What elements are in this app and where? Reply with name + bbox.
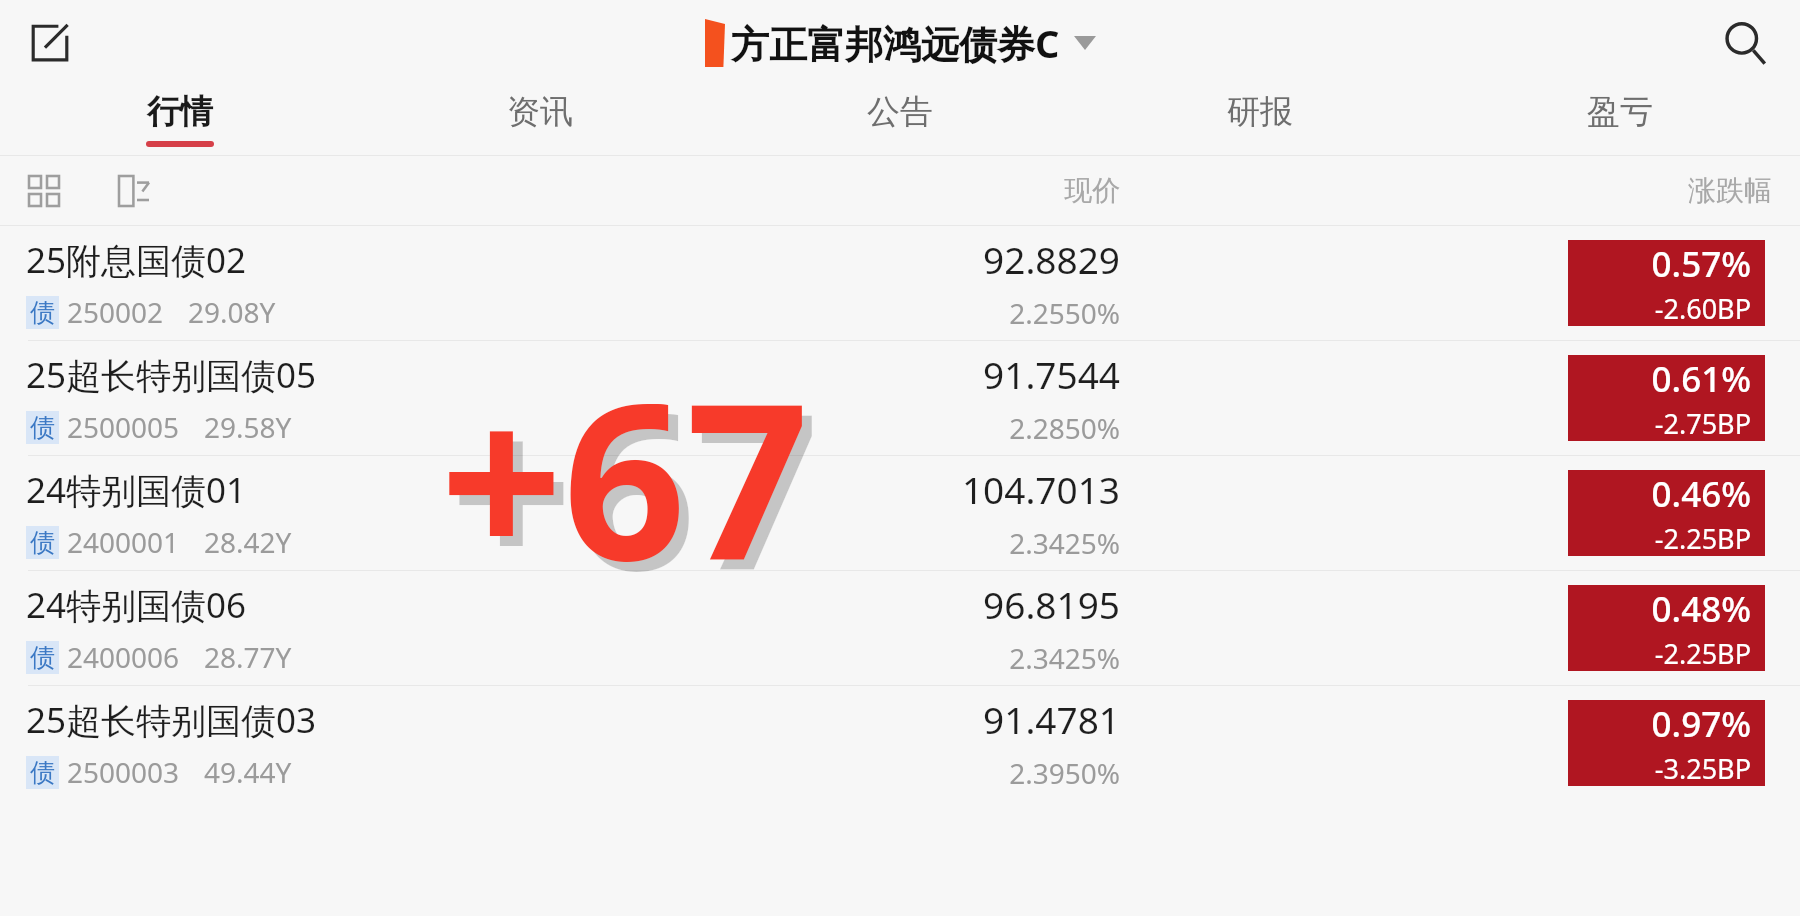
staticText: 方正富邦鸿远债券C xyxy=(731,17,1060,69)
staticText: 49.44Y xyxy=(204,753,292,791)
staticText: 104.7013 xyxy=(961,464,1120,514)
button[interactable]: Sort xyxy=(112,169,156,213)
staticText: 债 xyxy=(30,527,55,558)
staticText: 28.77Y xyxy=(204,638,292,676)
staticText: 研报 xyxy=(1227,91,1293,133)
staticText: 2400001 xyxy=(67,523,180,561)
staticText: 2500003 xyxy=(67,753,180,791)
staticText: 盈亏 xyxy=(1587,91,1653,133)
staticText: 债 xyxy=(30,412,55,443)
staticText: 2.3425% xyxy=(1009,524,1120,562)
staticText: 25附息国债02 xyxy=(26,236,247,284)
staticText: -2.60BP xyxy=(1654,290,1751,326)
staticText: -2.25BP xyxy=(1654,635,1751,671)
button[interactable]: 研报 xyxy=(1080,85,1440,155)
staticText: -3.25BP xyxy=(1654,750,1751,786)
staticText: 2400006 xyxy=(67,638,180,676)
staticText: 债 xyxy=(30,297,55,328)
staticText: 28.42Y xyxy=(204,523,292,561)
button[interactable]: Edit xyxy=(22,15,78,71)
button[interactable]: 方正富邦鸿远债券C xyxy=(705,17,1096,69)
staticText: 92.8829 xyxy=(983,234,1120,284)
staticText: 0.97% xyxy=(1651,700,1751,748)
button[interactable]: Search xyxy=(1714,12,1776,74)
button[interactable]: 行情 xyxy=(0,85,360,155)
staticText: -2.75BP xyxy=(1654,405,1751,441)
staticText: 0.46% xyxy=(1651,470,1751,518)
staticText: 0.61% xyxy=(1651,355,1751,403)
staticText: 25超长特别国债05 xyxy=(26,351,317,399)
staticText: 2.3425% xyxy=(1009,639,1120,677)
staticText: 涨跌幅 xyxy=(1688,173,1772,208)
button[interactable]: 盈亏 xyxy=(1440,85,1800,155)
button[interactable]: 24特别国债01 xyxy=(0,456,1800,570)
button[interactable]: 25附息国债02 xyxy=(0,226,1800,340)
staticText: 2500005 xyxy=(67,408,180,446)
staticText: -2.25BP xyxy=(1654,520,1751,556)
staticText: 91.7544 xyxy=(983,349,1120,399)
staticText: +67 xyxy=(450,340,819,633)
staticText: 96.8195 xyxy=(983,579,1120,629)
button[interactable]: 25超长特别国债05 xyxy=(0,341,1800,455)
staticText: 91.4781 xyxy=(983,694,1120,744)
staticText: 资讯 xyxy=(507,91,573,133)
staticText: 行情 xyxy=(147,91,213,133)
staticText: 0.57% xyxy=(1651,240,1751,288)
staticText: 债 xyxy=(30,642,55,673)
staticText: 0.48% xyxy=(1651,585,1751,633)
button[interactable]: 公告 xyxy=(720,85,1080,155)
button[interactable]: 25超长特别国债03 xyxy=(0,686,1800,800)
staticText: 2.3950% xyxy=(1009,754,1120,792)
staticText: 2.2550% xyxy=(1009,294,1120,332)
staticText: 公告 xyxy=(867,91,933,133)
staticText: 250002 xyxy=(67,293,164,331)
button[interactable]: 资讯 xyxy=(360,85,720,155)
staticText: 现价 xyxy=(1064,173,1120,208)
staticText: +67 xyxy=(440,330,809,623)
staticText: 2.2850% xyxy=(1009,409,1120,447)
button[interactable]: 24特别国债06 xyxy=(0,571,1800,685)
staticText: 债 xyxy=(30,757,55,788)
staticText: 25超长特别国债03 xyxy=(26,696,317,744)
staticText: 29.08Y xyxy=(188,293,276,331)
staticText: 29.58Y xyxy=(204,408,292,446)
staticText: 24特别国债01 xyxy=(26,466,247,514)
staticText: 24特别国债06 xyxy=(26,581,247,629)
button[interactable]: Grid view xyxy=(22,169,66,213)
